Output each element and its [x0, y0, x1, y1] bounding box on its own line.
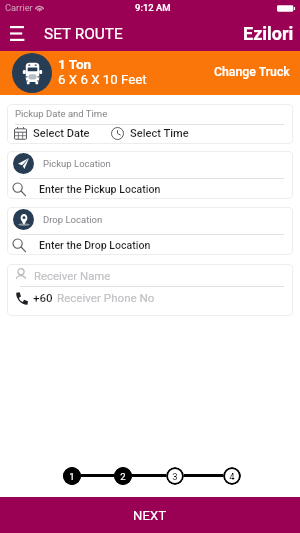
button[interactable]: 3	[166, 467, 184, 485]
staticText: Pickup Location	[43, 158, 111, 169]
staticText: 4	[229, 471, 235, 482]
staticText: Enter the Drop Location	[39, 239, 151, 251]
button[interactable]: Receiver Name	[7, 268, 293, 282]
button[interactable]: Enter the Pickup Location	[7, 182, 293, 196]
staticText: Select Time	[130, 127, 189, 140]
staticText: +60	[33, 291, 53, 305]
button[interactable]: Open navigation menu	[0, 16, 33, 51]
staticText: Receiver Phone No	[57, 291, 155, 305]
button[interactable]: Change Truck	[209, 59, 295, 85]
staticText: Change Truck	[214, 65, 290, 79]
button[interactable]: Select Time	[111, 127, 189, 140]
button[interactable]: 2	[114, 467, 132, 485]
staticText: 6 X 6 X 10 Feet	[58, 72, 147, 88]
staticText: 9:12 AM	[135, 2, 171, 13]
staticText: SET ROUTE	[44, 25, 123, 43]
button[interactable]: +60	[7, 291, 293, 305]
staticText: Drop Location	[43, 214, 103, 225]
staticText: 1 Ton	[58, 56, 92, 72]
staticText: 3	[172, 471, 178, 482]
staticText: 2	[120, 471, 126, 482]
staticText: Carrier	[5, 2, 33, 13]
staticText: Receiver Name	[34, 269, 111, 282]
staticText: NEXT	[133, 508, 167, 523]
staticText: Enter the Pickup Location	[39, 183, 161, 195]
button[interactable]: 4	[223, 467, 241, 485]
staticText: Ezilori	[243, 23, 294, 44]
staticText: Pickup Date and Time	[15, 108, 108, 119]
button[interactable]: NEXT	[0, 497, 300, 533]
button[interactable]: Enter the Drop Location	[7, 238, 293, 252]
button[interactable]: Select Date	[14, 127, 90, 140]
staticText: Select Date	[33, 127, 90, 140]
staticText: 1	[69, 471, 75, 482]
button[interactable]: 1	[63, 467, 81, 485]
